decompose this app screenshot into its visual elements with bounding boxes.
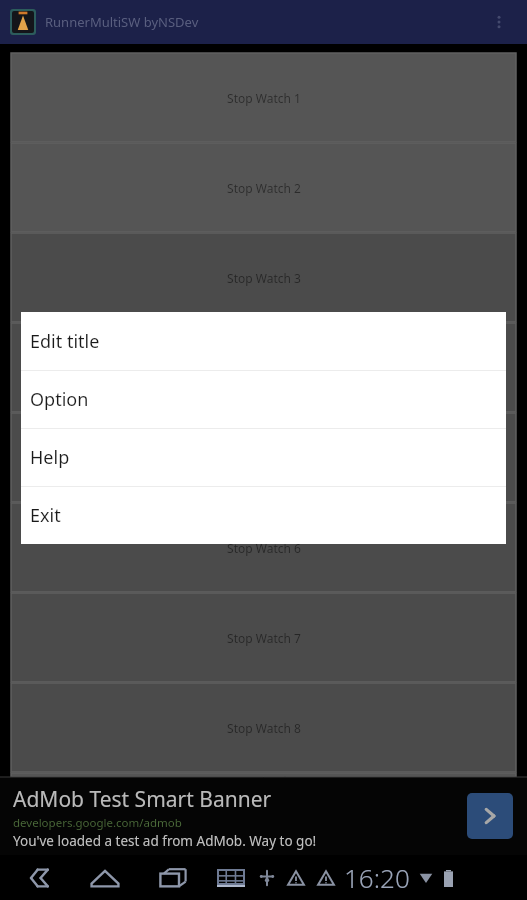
button[interactable]: Exit [21,487,506,544]
button[interactable]: Stop Watch 4 [11,323,516,412]
staticText: RunnerMultiSW byNSDev [45,13,199,31]
button[interactable]: Stop Watch 7 [11,593,516,682]
button[interactable]: Option [21,371,506,428]
button[interactable]: AdMob Test Smart Banner [0,777,527,855]
button[interactable]: Stop Watch 8 [11,683,516,772]
button[interactable]: Help [21,429,506,486]
staticText: 16:20 [344,860,410,895]
button[interactable]: Stop Watch 6 [11,503,516,592]
button[interactable]: Recent apps [150,855,196,900]
button[interactable]: Keyboard [214,861,248,895]
button[interactable]: Edit title [21,312,506,370]
button[interactable]: Stop Watch 5 [11,413,516,502]
button[interactable]: More options [479,2,519,42]
staticText: developers.google.com/admob [13,815,182,831]
staticText: Help [30,445,70,470]
button[interactable]: Stop Watch 3 [11,233,516,322]
button[interactable]: Open ad [467,793,513,839]
button[interactable]: Back [14,855,60,900]
staticText: AdMob Test Smart Banner [13,785,272,814]
staticText: Stop Watch 9 [227,773,301,777]
button[interactable]: App icon [12,11,34,33]
staticText: Edit title [30,329,100,354]
button[interactable]: Stop Watch 9 [11,773,516,777]
staticText: You've loaded a test ad from AdMob. Way … [13,832,317,850]
staticText: Stop Watch 7 [227,630,301,646]
button[interactable]: Home [82,855,128,900]
staticText: Stop Watch 8 [227,720,301,736]
staticText: Stop Watch 6 [227,540,301,556]
staticText: Stop Watch 4 [227,360,301,376]
staticText: Stop Watch 1 [227,90,301,106]
staticText: Exit [30,503,61,528]
staticText: Stop Watch 3 [227,270,301,286]
staticText: Option [30,387,89,412]
staticText: Stop Watch 2 [227,180,301,196]
